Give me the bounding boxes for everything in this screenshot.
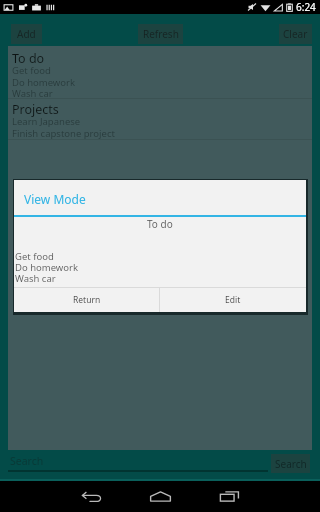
staticText: 6:24 [296,0,316,14]
staticText: Do homework [12,76,76,89]
staticText: Search [10,454,44,468]
staticText: Add [17,27,36,41]
staticText: Do homework [15,261,79,274]
staticText: Learn Japanese [12,115,81,128]
staticText: Get food [12,64,51,77]
staticText: To do [12,50,45,67]
button[interactable]: Search [8,452,268,472]
staticText: Finish capstone project [12,127,115,140]
button[interactable]: Refresh [138,24,183,44]
staticText: Edit [225,294,241,306]
staticText: Search [275,457,307,471]
staticText: Refresh [143,27,179,41]
button[interactable]: Home [136,481,184,512]
staticText: View Mode [24,191,86,207]
button[interactable]: Edit [160,288,306,312]
button[interactable]: Back [68,481,116,512]
button[interactable]: Add [11,24,42,44]
staticText: Clear [283,27,308,41]
staticText: Get food [15,250,54,263]
staticText: Wash car [15,272,56,285]
button[interactable] [8,46,312,98]
button[interactable] [8,99,312,139]
button[interactable]: Clear [279,24,312,44]
staticText: Projects [12,101,59,118]
button[interactable]: Return [14,288,159,312]
staticText: To do [147,217,173,231]
staticText: Return [73,294,101,306]
button[interactable]: Search [271,454,310,473]
button[interactable]: Recent apps [205,481,253,512]
staticText: Wash car [12,87,53,100]
